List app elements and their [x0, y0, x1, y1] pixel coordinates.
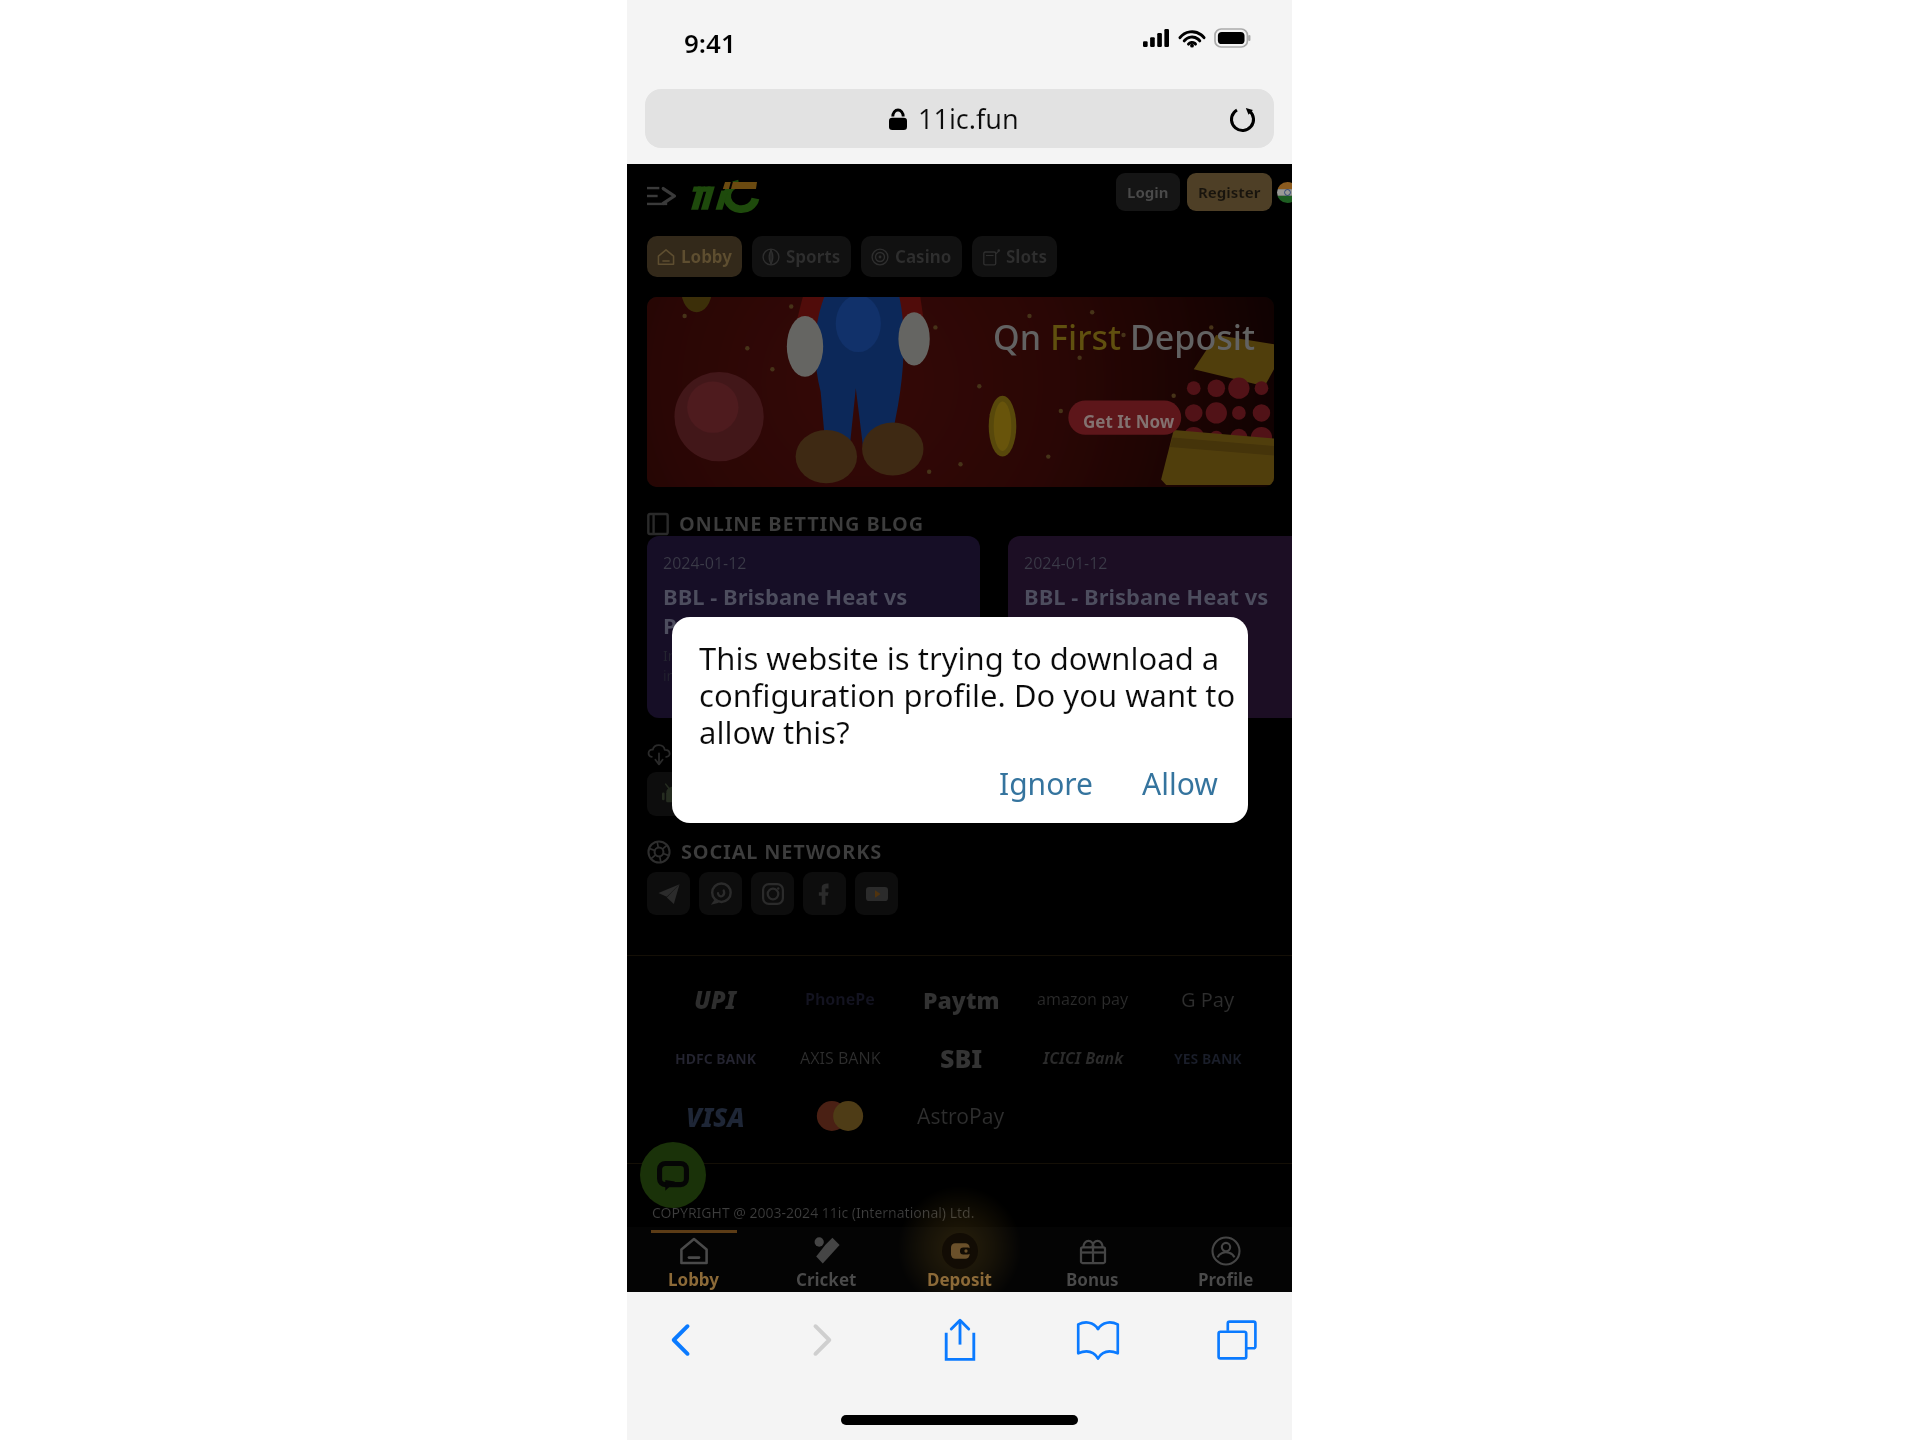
staticText: Get It Now [1083, 410, 1175, 433]
staticText: Register [1198, 182, 1261, 202]
staticText: AXIS BANK [800, 1047, 881, 1069]
button[interactable]: WhatsApp [699, 872, 742, 915]
button[interactable]: Facebook [803, 872, 846, 915]
staticText: ICICI Bank [1043, 1047, 1124, 1069]
staticText: Profile [1198, 1268, 1254, 1291]
staticText: COPYRIGHT @ 2003-2024 11ic (Internationa… [652, 1203, 975, 1222]
button[interactable]: Live chat [640, 1142, 706, 1208]
button[interactable]: Casino [861, 236, 962, 277]
button[interactable]: Ignore [985, 753, 1108, 814]
staticText: PhonePe [805, 988, 875, 1010]
button[interactable]: Telegram [647, 872, 690, 915]
button[interactable]: 2024-01-12 [1008, 536, 1292, 718]
button[interactable]: Back [647, 1305, 717, 1375]
button[interactable]: Reload [1220, 97, 1264, 141]
staticText: Deposit [927, 1268, 992, 1291]
staticText: SOCIAL NETWORKS [681, 838, 883, 865]
button[interactable]: Register [1187, 173, 1272, 211]
staticText: In this article, we will be providing in… [663, 646, 970, 686]
button[interactable]: Share [925, 1305, 995, 1375]
staticText: 11ic.fun [918, 100, 1019, 137]
button[interactable]: Bookmarks [1063, 1305, 1133, 1375]
staticText: 2024-01-12 [663, 552, 747, 574]
button[interactable]: Deposit [893, 1227, 1026, 1291]
button[interactable]: Slots [972, 236, 1057, 277]
staticText: BBL - Brisbane Heat vs Perth Scorchers P… [663, 581, 970, 640]
button[interactable]: Allow [1128, 753, 1232, 814]
button[interactable]: Lobby [647, 236, 742, 277]
staticText: HDFC BANK [675, 1049, 756, 1068]
staticText: APP DOWNLOAD [681, 740, 856, 767]
button[interactable]: 2024-01-12 [647, 536, 980, 718]
staticText: SBI [940, 1041, 983, 1075]
staticText: ONLINE BETTING BLOG [679, 510, 924, 537]
staticText: Slots [1006, 245, 1047, 268]
staticText: First [1050, 314, 1130, 360]
staticText: G Pay [1181, 986, 1235, 1013]
staticText: VISA [686, 1099, 745, 1134]
button[interactable]: Login [1116, 173, 1180, 211]
staticText: This website is trying to download a con… [699, 637, 1239, 753]
staticText: UPI [694, 983, 736, 1016]
staticText: AstroPay [917, 1102, 1005, 1131]
staticText: Bonus [1066, 1268, 1119, 1291]
button[interactable]: Bonus [1026, 1227, 1159, 1291]
staticText: BBL - Brisbane Heat vs Perth Scorchers P… [1024, 581, 1292, 669]
button[interactable]: YouTube [855, 872, 898, 915]
button[interactable]: 11ic home [689, 181, 757, 211]
staticText: Lobby [681, 245, 732, 268]
staticText: Casino [895, 245, 952, 268]
staticText: amazon pay [1037, 988, 1129, 1010]
button[interactable]: Lobby [627, 1227, 760, 1291]
staticText: Sports [786, 245, 841, 268]
staticText: Lobby [668, 1268, 719, 1291]
button[interactable]: Download Android app [647, 772, 703, 816]
staticText: YES BANK [1174, 1049, 1242, 1068]
button[interactable]: Instagram [751, 872, 794, 915]
staticText: In this article, we will be providing in… [1024, 675, 1292, 715]
staticText: 2024-01-12 [1024, 552, 1108, 574]
button[interactable]: Qn [647, 297, 1274, 487]
staticText: 9:41 [684, 25, 736, 60]
button[interactable]: Language [1277, 182, 1292, 203]
button[interactable]: Forward [786, 1305, 856, 1375]
staticText: Allow [1142, 763, 1218, 804]
staticText: Deposit [1130, 314, 1255, 360]
button[interactable]: Sports [752, 236, 851, 277]
staticText: Ignore [999, 763, 1094, 804]
button[interactable]: Menu [647, 181, 681, 211]
staticText: Qn [993, 314, 1050, 360]
staticText: Paytm [923, 984, 1000, 1015]
button[interactable]: Cricket [760, 1227, 893, 1291]
button[interactable]: 11ic.fun [645, 89, 1274, 148]
button[interactable]: Tabs [1202, 1305, 1272, 1375]
staticText: Login [1127, 182, 1169, 202]
staticText: Cricket [796, 1268, 857, 1291]
button[interactable]: Profile [1159, 1227, 1292, 1291]
